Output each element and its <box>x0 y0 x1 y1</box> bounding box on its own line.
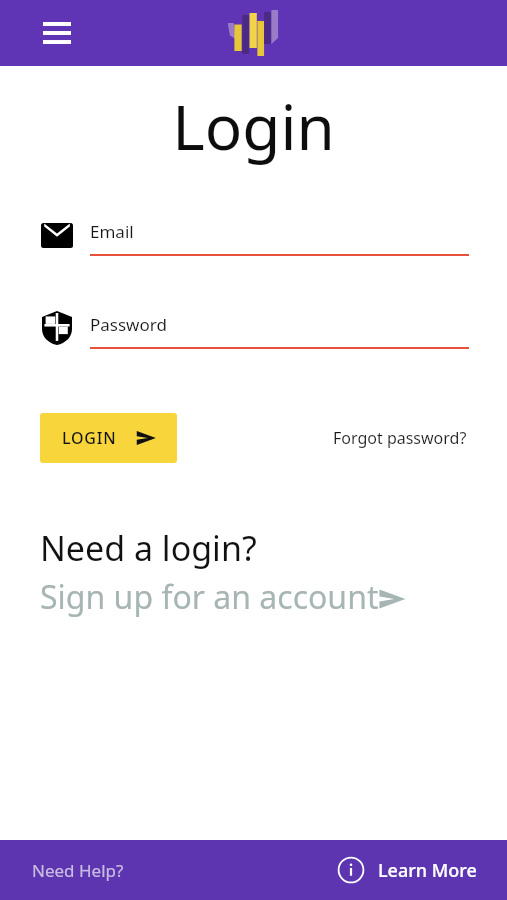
button[interactable]: Need a login? <box>0 525 507 619</box>
staticText: Password <box>90 313 167 336</box>
staticText: Forgot password? <box>333 427 467 449</box>
button[interactable]: Email <box>0 220 507 258</box>
button[interactable]: Forgot password? <box>331 423 469 453</box>
staticText: LOGIN <box>62 427 117 449</box>
staticText: Email <box>90 220 134 243</box>
staticText: Learn More <box>378 858 477 883</box>
button[interactable]: Learn More <box>334 851 481 889</box>
staticText: Sign up for an account <box>40 575 379 619</box>
button[interactable]: LOGIN <box>40 413 177 463</box>
button[interactable]: Need Help? <box>28 851 128 890</box>
button[interactable]: Password <box>0 313 507 351</box>
staticText: Login <box>0 84 507 168</box>
staticText: Need a login? <box>40 525 257 571</box>
button[interactable]: Menu <box>36 12 78 54</box>
staticText: Need Help? <box>32 859 124 882</box>
